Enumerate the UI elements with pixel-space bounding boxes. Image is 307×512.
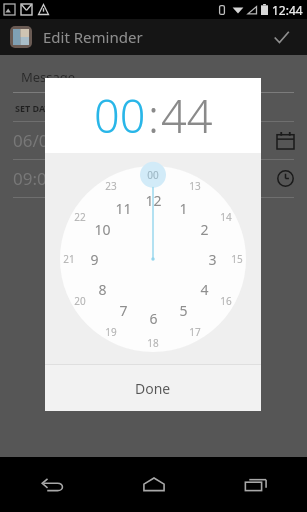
button[interactable]: Back: [0, 457, 103, 512]
button[interactable]: 44: [161, 85, 213, 146]
staticText: 23: [105, 179, 117, 193]
staticText: 20: [74, 294, 86, 308]
button[interactable]: 00: [60, 166, 246, 352]
staticText: Edit Reminder: [43, 27, 143, 47]
staticText: 9: [90, 250, 99, 269]
staticText: 15: [231, 252, 243, 266]
staticText: 5: [179, 301, 188, 320]
staticText: Done: [135, 379, 171, 398]
staticText: 12:44: [272, 2, 303, 18]
staticText: 22: [74, 210, 86, 224]
staticText: 09:00: [13, 167, 57, 190]
staticText: 11: [115, 199, 132, 218]
staticText: 00: [94, 85, 146, 146]
staticText: 06/09/2015: [13, 129, 104, 152]
staticText: 3: [208, 250, 217, 269]
staticText: 21: [63, 252, 75, 266]
staticText: 10: [94, 220, 111, 239]
staticText: 13: [189, 179, 201, 193]
staticText: 12: [145, 191, 162, 210]
staticText: 1: [179, 199, 188, 218]
staticText: 16: [220, 294, 232, 308]
button[interactable]: Save: [267, 23, 295, 51]
staticText: 18: [147, 336, 159, 350]
staticText: 4: [200, 280, 209, 299]
staticText: 14: [220, 210, 232, 224]
button[interactable]: 06/09/2015: [13, 122, 294, 159]
staticText: SET DATE & TIME: [15, 102, 89, 114]
button[interactable]: Recents: [205, 457, 307, 512]
staticText: 44: [161, 85, 213, 146]
staticText: :: [148, 85, 159, 146]
staticText: 2: [200, 220, 209, 239]
staticText: 00: [147, 168, 159, 182]
button[interactable]: 09:00: [13, 160, 294, 197]
button[interactable]: 00: [94, 85, 146, 146]
staticText: 8: [98, 280, 107, 299]
button[interactable]: Done: [45, 365, 261, 411]
staticText: 17: [189, 325, 201, 339]
staticText: Message: [21, 68, 76, 86]
staticText: 6: [149, 309, 158, 328]
staticText: 19: [105, 325, 117, 339]
button[interactable]: Home: [103, 457, 205, 512]
staticText: 7: [119, 301, 128, 320]
